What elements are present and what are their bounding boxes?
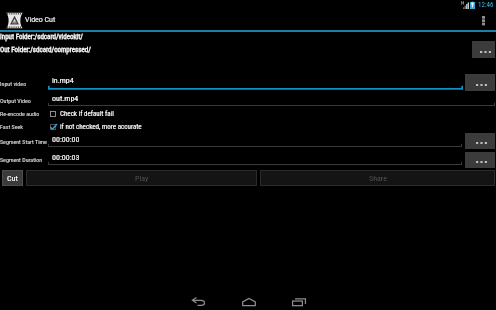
staticText: Re-encode audio	[0, 110, 40, 117]
staticText: Input video	[0, 80, 27, 87]
staticText: Segment Duration	[0, 156, 43, 163]
button[interactable]: if not checked, more accurate	[50, 121, 142, 133]
button[interactable]: Play	[26, 170, 257, 186]
staticText: Input Folder:/sdcard/videokit/	[0, 33, 83, 41]
button[interactable]: Cut	[2, 170, 23, 186]
button[interactable]: in.mp4	[48, 76, 463, 92]
staticText: Share	[369, 174, 387, 183]
staticText: Check if default fail	[60, 110, 114, 118]
button[interactable]: out.mp4	[48, 94, 495, 109]
button[interactable]: Browse	[465, 152, 495, 168]
button[interactable]: More options	[472, 12, 496, 30]
staticText: Video Cut	[25, 16, 56, 24]
button: Back	[183, 292, 331, 310]
staticText: 12:46	[478, 1, 494, 9]
staticText: Output Video	[0, 97, 31, 104]
staticText: Fast Seek	[0, 123, 23, 130]
button[interactable]: Recent apps	[283, 292, 315, 310]
staticText: out.mp4	[52, 94, 79, 103]
button[interactable]: Back	[183, 292, 215, 310]
staticText: Segment Start Time	[0, 138, 47, 145]
button[interactable]: Home	[233, 292, 265, 310]
button[interactable]: 00:00:03	[48, 153, 462, 168]
button[interactable]: Browse	[465, 74, 495, 91]
staticText: if not checked, more accurate	[60, 123, 142, 131]
button[interactable]: Browse	[472, 41, 495, 58]
button[interactable]: 00:00:00	[48, 135, 462, 150]
button[interactable]: Browse	[465, 133, 495, 149]
staticText: Play	[135, 174, 149, 183]
button[interactable]: Share	[260, 170, 495, 186]
staticText: 00:00:03	[52, 153, 80, 162]
staticText: Out Folder:/sdcard/compressed/	[0, 46, 91, 54]
staticText: 00:00:00	[52, 135, 80, 144]
button[interactable]: Check if default fail	[50, 108, 114, 120]
staticText: Cut	[7, 174, 18, 183]
staticText: in.mp4	[52, 76, 74, 85]
